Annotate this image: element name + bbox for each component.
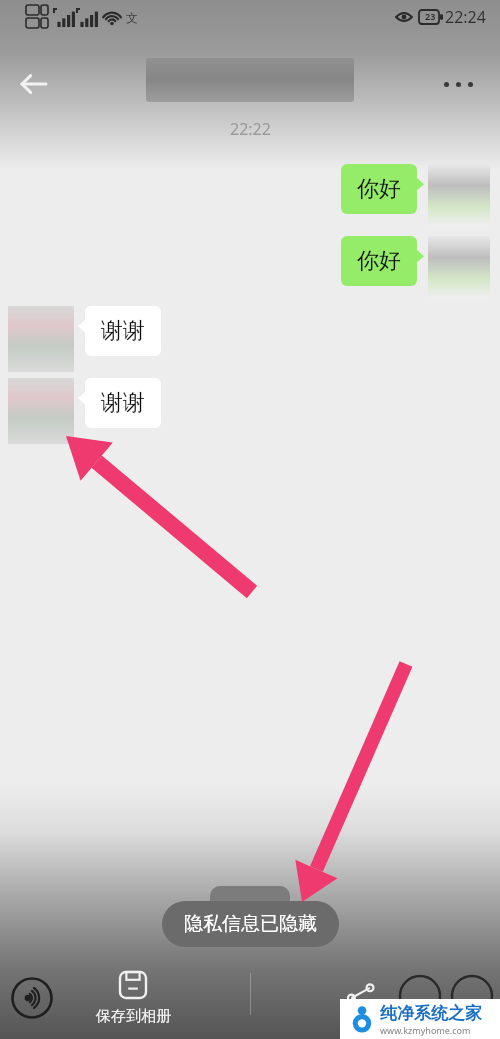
staticText: 你好	[357, 247, 401, 275]
staticText: www.kzmyhome.com	[380, 1024, 471, 1036]
staticText: 22:22	[230, 118, 271, 140]
button[interactable]: Favorite	[450, 974, 494, 1018]
staticText: 23	[425, 10, 436, 22]
staticText: 文	[126, 10, 138, 25]
button[interactable]: More options	[434, 60, 482, 108]
staticText: 你好	[357, 175, 401, 203]
button[interactable]: 你好	[341, 236, 424, 286]
staticText: 纯净系统之家	[380, 1003, 482, 1024]
button[interactable]: Speaker	[4, 970, 60, 1026]
staticText: 隐私信息已隐藏	[184, 912, 317, 936]
staticText: 全屏显示	[222, 901, 278, 919]
button[interactable]: 你好	[341, 164, 424, 214]
button[interactable]: Back	[10, 60, 58, 108]
button[interactable]: Emoji	[398, 974, 442, 1018]
staticText: 22:24	[445, 6, 486, 28]
staticText: 谢谢	[101, 317, 145, 345]
button[interactable]: 谢谢	[78, 378, 161, 428]
button[interactable]: Share	[334, 971, 388, 1025]
button[interactable]: 谢谢	[78, 306, 161, 356]
staticText: 谢谢	[101, 389, 145, 417]
button[interactable]: 保存到相册	[78, 970, 188, 1026]
staticText: 保存到相册	[96, 1007, 171, 1026]
